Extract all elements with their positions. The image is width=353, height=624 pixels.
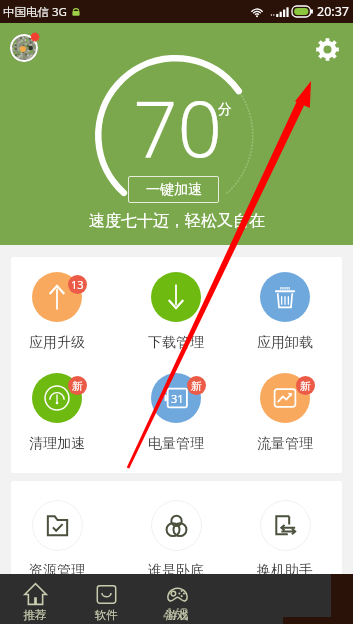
button[interactable]: 13 bbox=[13, 272, 101, 352]
staticText: 20:37 bbox=[317, 3, 349, 20]
staticText: 速度七十迈，轻松又自在 bbox=[89, 211, 265, 231]
button[interactable]: 新 bbox=[241, 373, 329, 453]
staticText: 游戏 bbox=[144, 608, 210, 622]
staticText: 应用升级 bbox=[13, 334, 101, 352]
staticText: 4/8 bbox=[163, 602, 189, 624]
staticText: 清理加速 bbox=[13, 435, 101, 453]
staticText: 70 bbox=[133, 74, 223, 180]
button[interactable]: 31 bbox=[132, 373, 220, 453]
staticText: 电量管理 bbox=[132, 435, 220, 453]
staticText: 中国电信 3G bbox=[3, 4, 67, 20]
button[interactable]: Profile bbox=[8, 32, 40, 64]
button[interactable]: 新 bbox=[13, 373, 101, 453]
staticText: 流量管理 bbox=[241, 435, 329, 453]
button[interactable]: 推荐 bbox=[2, 574, 68, 624]
button[interactable]: 下载管理 bbox=[132, 272, 220, 352]
button[interactable]: 应用卸载 bbox=[241, 272, 329, 352]
button[interactable]: 谁是卧底 bbox=[132, 500, 220, 580]
staticText: 31 bbox=[171, 391, 184, 406]
staticText: 软件 bbox=[73, 608, 139, 622]
staticText: 应用卸载 bbox=[241, 334, 329, 352]
button[interactable]: 资源管理 bbox=[13, 500, 101, 580]
button[interactable]: 一键加速 bbox=[128, 176, 219, 203]
staticText: 谁是卧底 bbox=[132, 562, 220, 580]
staticText: 换机助手 bbox=[241, 562, 329, 580]
staticText: 13 bbox=[71, 277, 84, 292]
staticText: 新 bbox=[72, 379, 83, 393]
staticText: 资源管理 bbox=[13, 562, 101, 580]
staticText: 新 bbox=[300, 379, 311, 393]
button[interactable]: 换机助手 bbox=[241, 500, 329, 580]
staticText: 分 bbox=[218, 101, 232, 119]
staticText: 一键加速 bbox=[146, 181, 202, 199]
staticText: 新 bbox=[191, 379, 202, 393]
button[interactable]: 游戏 bbox=[144, 574, 210, 624]
staticText: 下载管理 bbox=[132, 334, 220, 352]
button[interactable]: Settings bbox=[311, 33, 343, 65]
staticText: 推荐 bbox=[2, 608, 68, 622]
button[interactable]: 软件 bbox=[73, 574, 139, 624]
